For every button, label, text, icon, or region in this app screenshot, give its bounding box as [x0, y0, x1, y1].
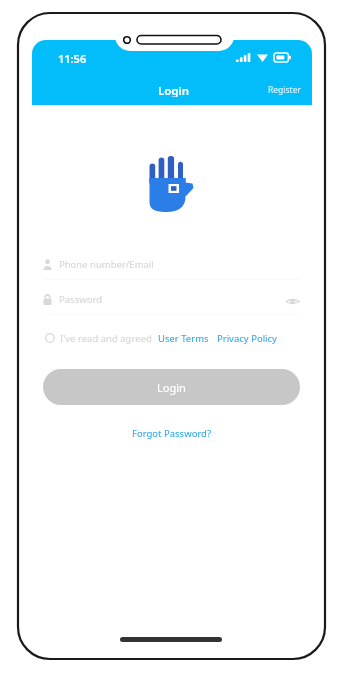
staticText: Privacy Policy — [217, 332, 277, 344]
staticText: Forgot Password? — [132, 427, 212, 440]
staticText: User Terms — [158, 332, 209, 344]
button[interactable]: User Terms — [158, 332, 209, 344]
button[interactable]: Agree to terms — [45, 333, 55, 343]
staticText: Login — [157, 380, 186, 395]
staticText: I've read and agreed — [60, 332, 152, 344]
staticText: Login — [158, 83, 190, 97]
button[interactable]: Register — [258, 82, 312, 98]
button[interactable]: Forgot Password? — [126, 424, 218, 443]
staticText: Phone number/Email — [59, 258, 154, 271]
button[interactable]: Login — [152, 81, 196, 99]
staticText: Password — [59, 293, 102, 306]
button[interactable]: Login — [43, 369, 300, 405]
button[interactable]: Show password — [285, 295, 300, 304]
button[interactable]: Privacy Policy — [217, 332, 277, 344]
staticText: Register — [268, 84, 301, 96]
staticText: 11:56 — [58, 51, 87, 64]
